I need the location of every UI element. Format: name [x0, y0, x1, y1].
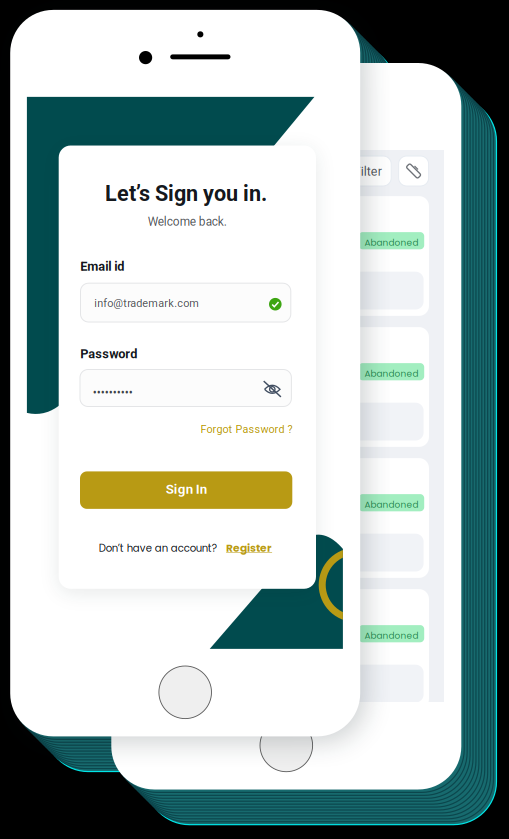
staticText: Let’s Sign you in. — [105, 181, 267, 206]
staticText: Sign In — [166, 481, 207, 497]
button[interactable]: Forgot Password ? — [59, 145, 291, 165]
staticText: Password — [80, 346, 137, 361]
staticText: Forgot Password ? — [200, 423, 292, 436]
staticText: Filter — [354, 164, 382, 179]
staticText: Register — [226, 540, 272, 555]
staticText: •••••••••• — [93, 385, 133, 400]
staticText: Welcome back. — [148, 215, 227, 229]
button[interactable]: Abandoned — [142, 720, 429, 839]
button[interactable]: Show password — [80, 369, 99, 387]
staticText: Email id — [80, 259, 124, 274]
staticText: Don’t have an account? — [99, 541, 217, 555]
staticText: Abandoned — [364, 498, 418, 511]
button[interactable]: Abandoned — [142, 458, 429, 578]
staticText: info@trademark.com — [94, 297, 199, 309]
button[interactable]: Abandoned — [142, 327, 429, 447]
button[interactable]: Register — [59, 145, 119, 165]
button[interactable]: Abandoned — [142, 196, 429, 316]
staticText: Abandoned — [364, 367, 418, 380]
staticText: Abandoned — [364, 236, 418, 249]
button[interactable]: Sign In — [59, 145, 271, 183]
staticText: Abandoned — [364, 629, 418, 642]
button[interactable]: Abandoned — [142, 589, 429, 709]
